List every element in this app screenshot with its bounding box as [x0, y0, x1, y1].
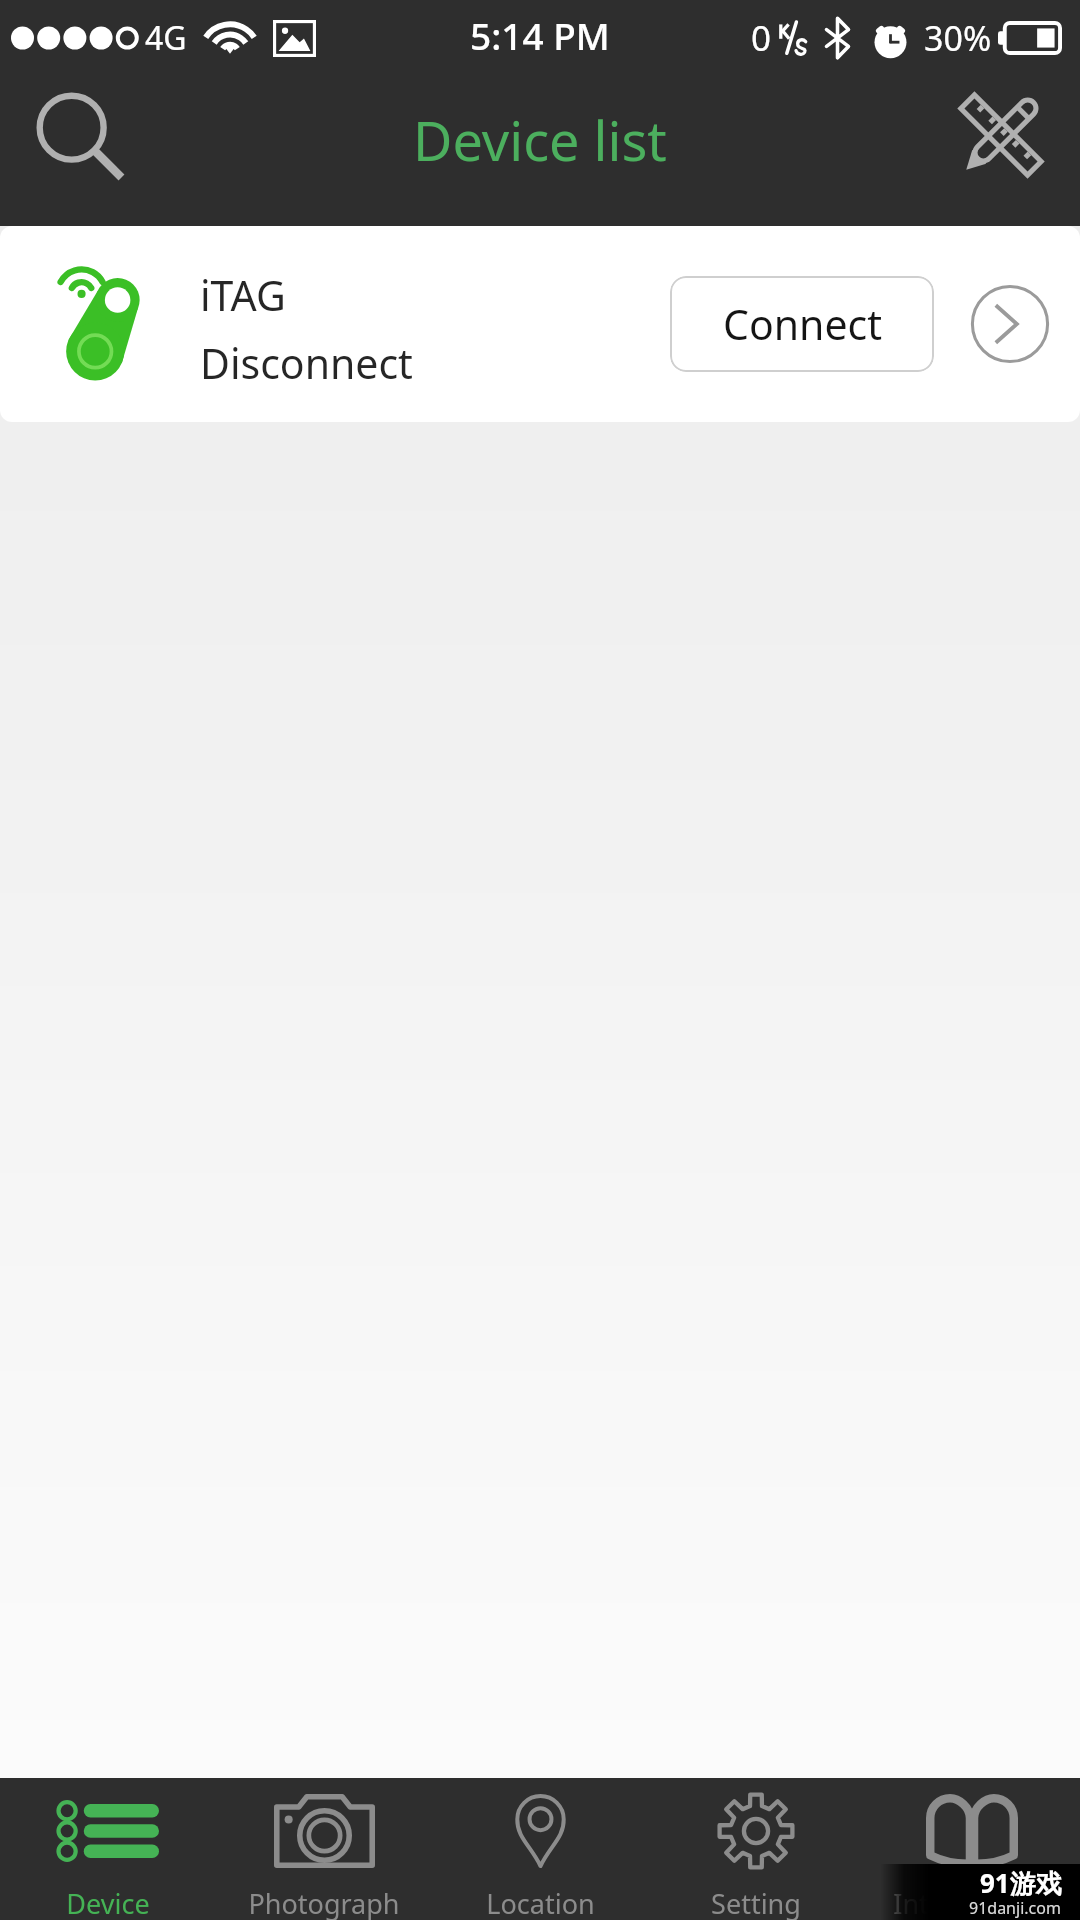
button[interactable]: Connect [670, 276, 934, 372]
staticText: 4G [145, 16, 187, 60]
button[interactable]: Location [432, 1778, 648, 1920]
staticText: 30% [924, 15, 992, 61]
staticText: Setting [711, 1885, 801, 1920]
staticText: Connect [723, 296, 882, 352]
button[interactable]: iTAG [0, 226, 1080, 422]
staticText: Disconnect [200, 335, 413, 391]
button[interactable]: Search [12, 68, 152, 208]
button[interactable]: Introduction [864, 1778, 1080, 1920]
staticText: 0 [751, 14, 772, 62]
staticText: iTAG [200, 267, 286, 323]
staticText: Device [66, 1885, 150, 1920]
button[interactable]: Photograph [216, 1778, 432, 1920]
button[interactable]: Setting [648, 1778, 864, 1920]
button[interactable]: Device details [970, 284, 1050, 364]
staticText: Location [486, 1885, 595, 1920]
button[interactable]: Device [0, 1778, 216, 1920]
staticText: Device list [413, 103, 667, 177]
staticText: 5:14 PM [470, 10, 610, 60]
staticText: 91游戏 [980, 1865, 1062, 1901]
staticText: Photograph [248, 1885, 400, 1920]
staticText: 91danji.com [969, 1897, 1061, 1919]
staticText: Introduction [893, 1885, 1052, 1920]
button[interactable]: Edit [931, 65, 1071, 205]
